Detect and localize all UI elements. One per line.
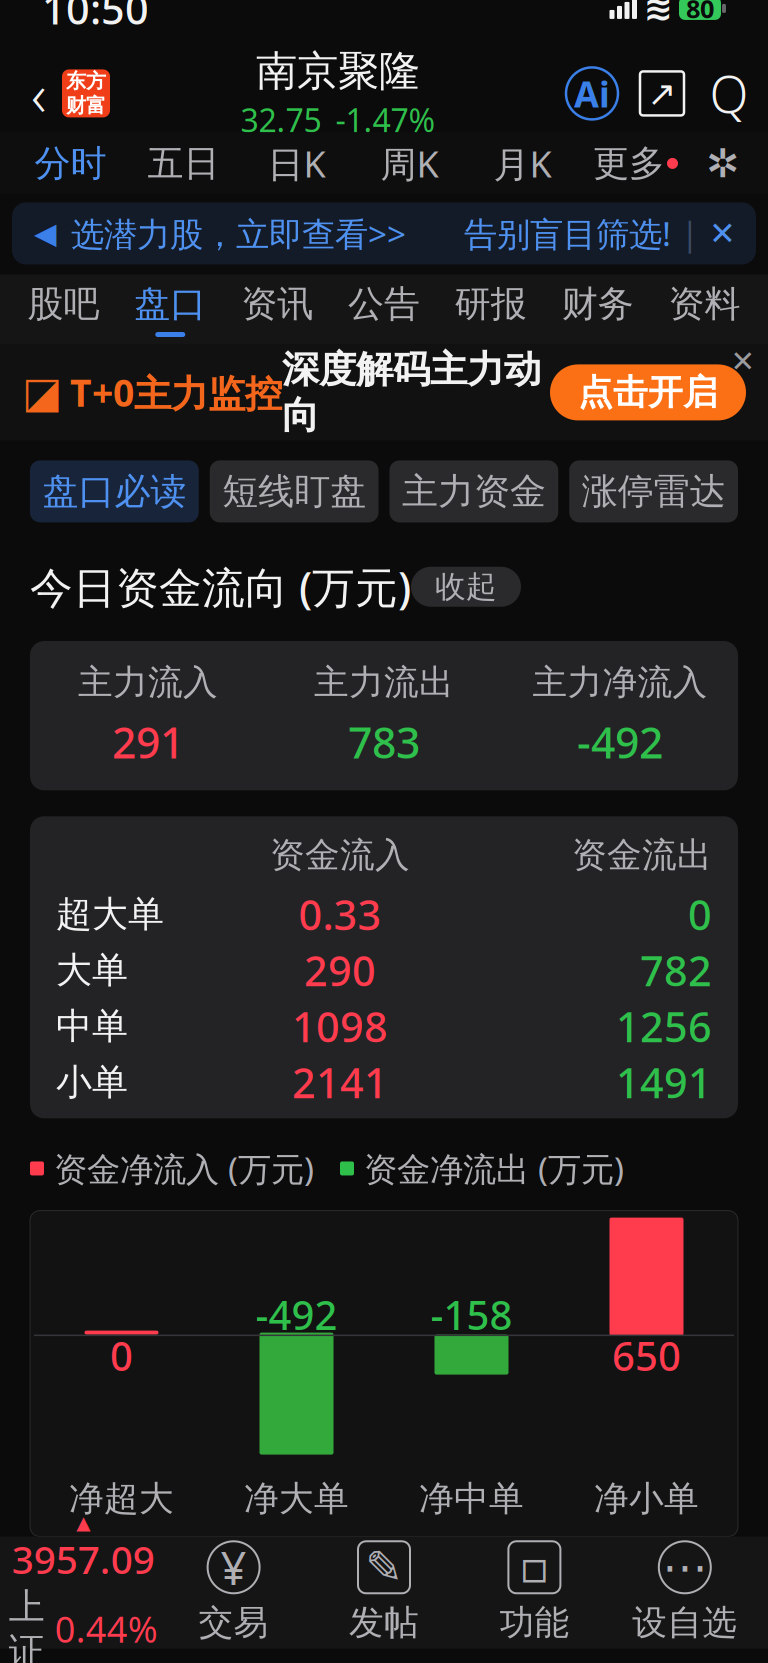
button[interactable]: 研报 [437, 274, 544, 344]
staticText: 资金净流入 (万元) [44, 1146, 314, 1191]
staticText: ↗ [647, 74, 676, 113]
staticText: 资料 [669, 282, 741, 326]
staticText: 短线盯盘 [222, 469, 366, 513]
staticText: 0 [110, 1329, 133, 1382]
staticText: 五日 [147, 141, 219, 185]
button[interactable]: 日K [240, 132, 353, 194]
button[interactable]: 五日 [127, 132, 240, 194]
staticText: -492 [577, 714, 663, 770]
button[interactable]: 财务 [544, 274, 651, 344]
button[interactable]: AI assistant [566, 67, 618, 119]
staticText: 净超大 [69, 1477, 174, 1520]
button[interactable]: 公告 [331, 274, 437, 344]
staticText: 财富 [66, 93, 106, 118]
staticText: 日K [267, 139, 325, 187]
staticText: T+0主力监控 [70, 367, 282, 417]
button[interactable]: 周K [353, 132, 466, 194]
staticText: 资讯 [241, 282, 313, 326]
button[interactable]: 盘口必读 [30, 460, 199, 522]
staticText: 告别盲目筛选! [464, 211, 671, 256]
staticText: 0 [688, 887, 712, 942]
button[interactable]: 股吧 [10, 274, 117, 344]
staticText: 2141 [292, 1055, 388, 1110]
staticText: 0.33 [298, 887, 381, 942]
button[interactable]: Back [16, 65, 62, 121]
button[interactable]: Settings [692, 132, 754, 194]
staticText: 财务 [562, 282, 634, 326]
staticText: ◀ [34, 217, 57, 250]
staticText: -492 [255, 1288, 337, 1341]
staticText: 分时 [34, 141, 106, 185]
button[interactable]: ▲ [8, 1512, 158, 1663]
staticText: | [681, 212, 699, 255]
staticText: ✲ [706, 141, 740, 186]
staticText: ¥ [221, 1537, 247, 1597]
staticText: 股吧 [27, 282, 99, 326]
button[interactable]: 分时 [14, 132, 127, 194]
staticText: ⋯ [662, 1542, 707, 1593]
staticText: 设自选 [632, 1601, 737, 1644]
staticText: 10:50 [42, 0, 149, 36]
staticText: ‹ [31, 54, 47, 132]
staticText: 80 [686, 0, 714, 25]
staticText: 783 [348, 714, 420, 770]
staticText: 研报 [455, 282, 527, 326]
button[interactable]: 资料 [651, 274, 758, 344]
button[interactable]: ¥ [158, 1541, 309, 1644]
staticText: 今日资金流向 (万元) [30, 558, 411, 615]
staticText: 290 [304, 943, 376, 998]
staticText: 782 [640, 943, 712, 998]
button[interactable]: 月K [466, 132, 579, 194]
staticText: 上证 [9, 1585, 45, 1663]
button[interactable]: 收起 [411, 567, 521, 607]
staticText: 收起 [435, 568, 497, 606]
staticText: 32.75 [240, 99, 321, 141]
button[interactable]: Search [706, 68, 752, 118]
staticText: -158 [430, 1288, 512, 1341]
staticText: 净小单 [594, 1477, 699, 1520]
staticText: 发帖 [349, 1601, 419, 1644]
staticText: ✕ [730, 345, 755, 378]
staticText: 东方 [66, 69, 106, 93]
button[interactable]: 短线盯盘 [210, 460, 379, 522]
staticText: 功能 [499, 1601, 569, 1644]
button[interactable]: ✎ [309, 1541, 459, 1644]
staticText: 大单 [56, 948, 128, 992]
staticText: ✕ [709, 215, 736, 252]
staticText: 3957.09 [12, 1533, 155, 1585]
staticText: ◪ [22, 368, 62, 417]
staticText: 更多 [593, 141, 665, 185]
button[interactable]: 资讯 [224, 274, 331, 344]
staticText: 资金净流出 (万元) [354, 1146, 624, 1191]
button[interactable]: Close ad [726, 346, 760, 376]
button[interactable]: ▫ [459, 1541, 610, 1644]
button[interactable]: 主力资金 [389, 460, 558, 522]
staticText: 小单 [56, 1060, 128, 1104]
button[interactable]: 盘口 [117, 274, 224, 344]
button[interactable]: 涨停雷达 [569, 460, 738, 522]
staticText: 净中单 [419, 1477, 524, 1520]
button[interactable]: Share [640, 71, 684, 115]
staticText: 主力净流入 [532, 661, 707, 704]
button[interactable]: ◀ [12, 202, 756, 264]
button[interactable]: ◪ [0, 344, 768, 440]
staticText: 月K [493, 139, 551, 187]
button[interactable]: ⋯ [610, 1541, 760, 1644]
staticText: Q [709, 60, 748, 127]
staticText: ✎ [365, 1542, 403, 1593]
staticText: 1256 [616, 999, 712, 1054]
staticText: 周K [380, 139, 438, 187]
staticText: 盘口必读 [42, 469, 186, 513]
button[interactable]: 东方财富 [62, 69, 110, 117]
staticText: 净大单 [244, 1477, 349, 1520]
staticText: 主力流出 [314, 661, 454, 704]
staticText: 盘口 [134, 282, 206, 326]
staticText: 资金流出 [572, 834, 712, 877]
staticText: 资金流入 [270, 834, 410, 877]
staticText: 1098 [292, 999, 388, 1054]
staticText: 中单 [56, 1004, 128, 1048]
staticText: 深度解码主力动向 [282, 347, 541, 438]
staticText: ▲ [76, 1512, 90, 1533]
staticText: 1491 [616, 1055, 712, 1110]
button[interactable]: 更多 [579, 132, 692, 194]
